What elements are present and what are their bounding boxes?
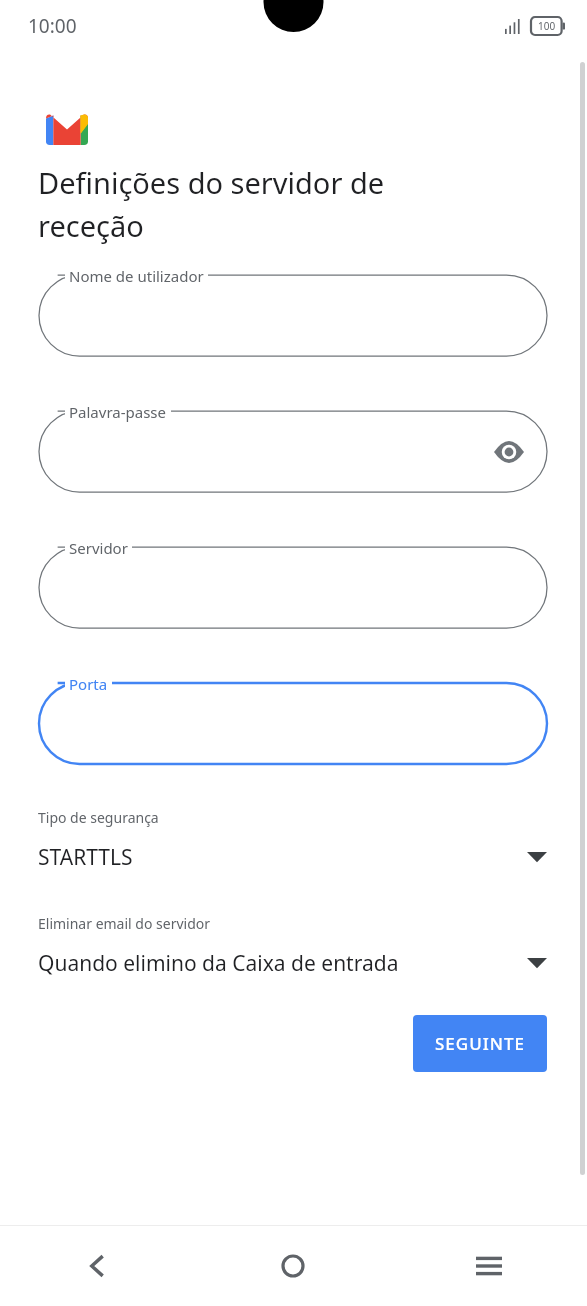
button[interactable]: Palavra-passe xyxy=(39,411,547,492)
staticText: Definições do servidor de receção xyxy=(38,163,385,245)
staticText: 100 xyxy=(538,19,556,33)
staticText: Porta xyxy=(69,674,108,694)
staticText: SEGUINTE xyxy=(435,1032,525,1055)
button[interactable]: Eliminar email do servidor xyxy=(0,914,587,978)
staticText: Servidor xyxy=(69,538,128,558)
button[interactable]: Nome de utilizador xyxy=(39,275,547,356)
button[interactable]: Recents xyxy=(391,1226,587,1306)
button[interactable]: Mostrar palavra-passe xyxy=(487,430,531,474)
staticText: STARTTLS xyxy=(38,843,527,872)
button[interactable]: Porta xyxy=(39,683,547,764)
button[interactable]: Home xyxy=(195,1226,391,1306)
staticText: Tipo de segurança xyxy=(38,808,159,827)
button[interactable]: Back xyxy=(0,1226,195,1306)
staticText: Eliminar email do servidor xyxy=(38,914,211,933)
staticText: Palavra-passe xyxy=(69,402,167,422)
button[interactable]: SEGUINTE xyxy=(413,1015,547,1072)
button[interactable]: Servidor xyxy=(39,547,547,628)
staticText: Nome de utilizador xyxy=(69,266,204,286)
staticText: 10:00 xyxy=(28,13,77,39)
button[interactable]: Tipo de segurança xyxy=(0,808,587,872)
staticText: Quando elimino da Caixa de entrada xyxy=(38,949,527,978)
